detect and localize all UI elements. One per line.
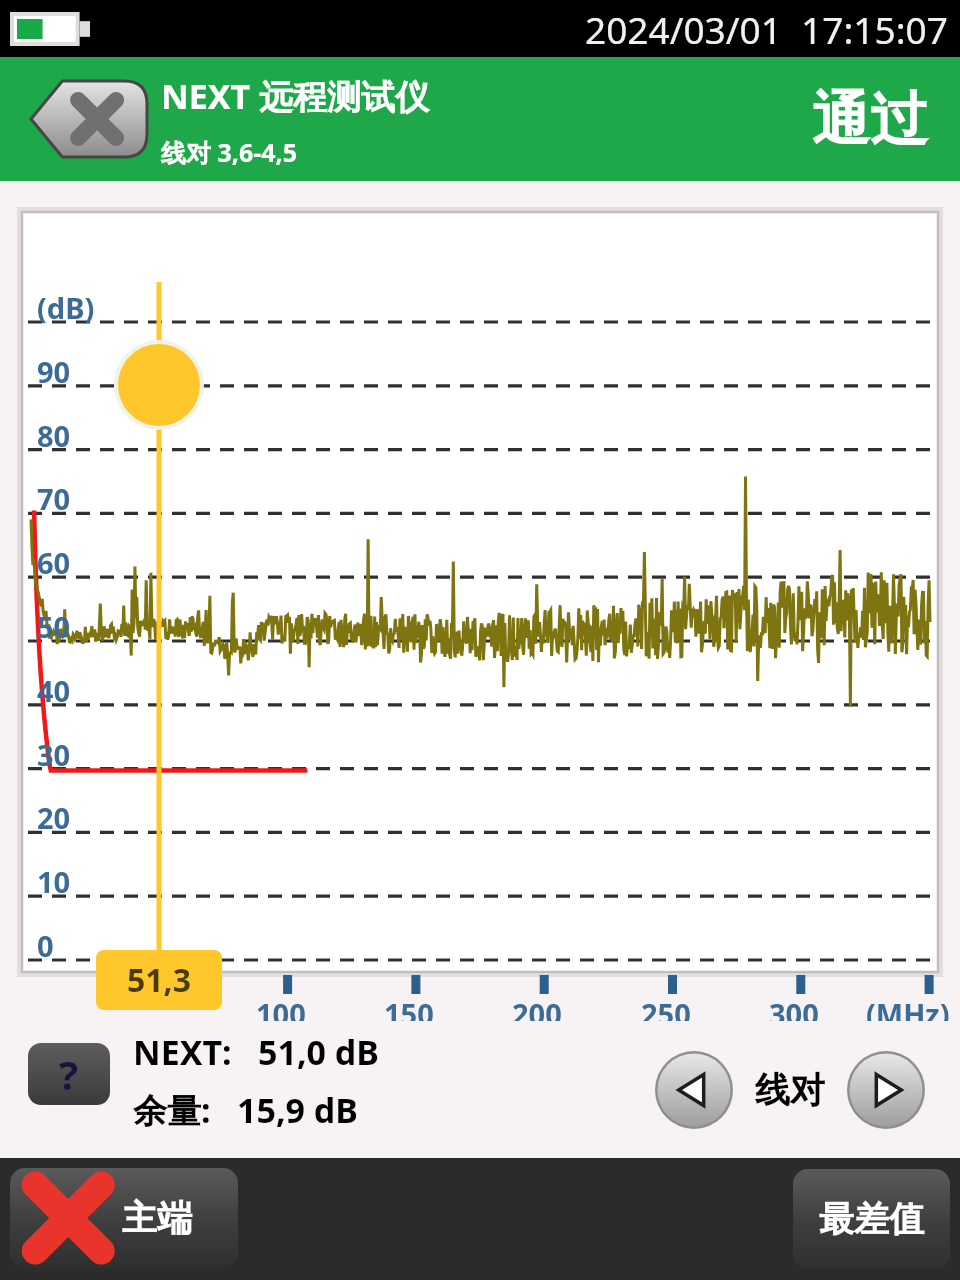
staticText: 100 (256, 994, 306, 1033)
staticText: (dB) (37, 288, 95, 327)
staticText: 150 (384, 994, 434, 1033)
staticText: NEXT: (133, 1029, 232, 1075)
staticText: 40 (37, 671, 71, 710)
staticText: 60 (37, 543, 71, 582)
staticText: 90 (37, 352, 71, 391)
staticText: 2024/03/01 17:15:07 (585, 4, 948, 54)
staticText: 51,0 dB (258, 1029, 379, 1075)
button[interactable]: Previous pair (655, 1051, 733, 1129)
staticText: 200 (512, 994, 562, 1033)
staticText: 线对 3,6-4,5 (161, 135, 297, 169)
staticText: 通过 (812, 83, 928, 156)
staticText: 主端 (122, 1196, 192, 1240)
staticText: NEXT 远程测试仪 (161, 73, 429, 119)
staticText: 15,9 dB (237, 1087, 358, 1133)
button[interactable]: Next pair (847, 1051, 925, 1129)
staticText: 250 (641, 994, 691, 1033)
staticText: 30 (37, 735, 71, 774)
staticText: (MHz) (866, 994, 950, 1033)
button[interactable]: Back (31, 81, 147, 157)
staticText: 线对 (755, 1068, 825, 1112)
staticText: 0 (37, 926, 54, 965)
button[interactable]: 最差值 (793, 1169, 950, 1269)
staticText: 80 (37, 416, 71, 455)
staticText: ? (59, 1047, 79, 1101)
button[interactable]: Help (28, 1043, 110, 1105)
staticText: 最差值 (819, 1197, 924, 1241)
staticText: 20 (37, 798, 71, 837)
staticText: 余量: (133, 1087, 211, 1133)
staticText: 70 (37, 479, 71, 518)
staticText: 300 (769, 994, 819, 1033)
staticText: 50 (37, 607, 71, 646)
button[interactable]: 主端 (10, 1168, 238, 1268)
staticText: 51,3 (127, 958, 192, 1002)
staticText: 10 (37, 862, 71, 901)
